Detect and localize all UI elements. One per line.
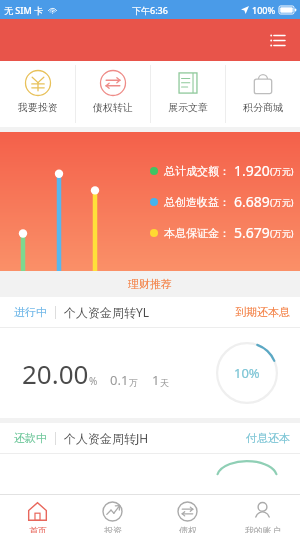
staticText: 债权转让 (93, 101, 133, 114)
staticText: 天 (160, 377, 169, 388)
staticText: 6.689 (234, 192, 270, 211)
staticText: 总创造收益： (164, 195, 230, 209)
staticText: (万元) (270, 227, 294, 239)
button[interactable]: 投资 (75, 495, 150, 533)
staticText: 进行中 (14, 305, 47, 319)
staticText: 展示文章 (168, 101, 208, 114)
staticText: 本息保证金： (164, 226, 230, 240)
staticText: (万元) (270, 196, 294, 208)
staticText: 投资 (104, 525, 122, 533)
staticText: 个人资金周转YL (64, 304, 150, 320)
button[interactable]: 还款中 (0, 423, 300, 494)
staticText: 还款中 (14, 431, 47, 445)
button[interactable]: 进行中 (0, 297, 300, 418)
staticText: % (89, 374, 98, 388)
staticText: 总计成交额： (164, 164, 230, 178)
button[interactable]: 首页 (0, 495, 75, 533)
staticText: 100% (252, 4, 276, 16)
staticText: 万 (129, 377, 138, 388)
staticText: 理财推荐 (128, 277, 172, 291)
staticText: 到期还本息 (235, 305, 290, 319)
staticText: 下午6:36 (132, 4, 168, 16)
button[interactable]: 展示文章 (151, 61, 225, 127)
staticText: 0.1 (110, 371, 129, 389)
staticText: 无 SIM 卡 (4, 4, 44, 16)
staticText: 我要投资 (18, 101, 58, 114)
button[interactable]: 债权 (150, 495, 225, 533)
staticText: 个人资金周转JH (64, 430, 149, 446)
staticText: 10% (234, 364, 260, 382)
staticText: 积分商城 (243, 101, 283, 114)
button[interactable]: 积分商城 (226, 61, 300, 127)
staticText: 1 (152, 371, 160, 389)
staticText: 1.920 (234, 161, 270, 180)
staticText: 债权 (179, 525, 197, 533)
staticText: 5.679 (234, 223, 270, 242)
staticText: (万元) (270, 165, 294, 177)
button[interactable]: 我要投资 (0, 61, 75, 127)
staticText: 首页 (29, 525, 47, 533)
button[interactable]: 债权转让 (76, 61, 150, 127)
button[interactable]: 我的账户 (225, 495, 300, 533)
staticText: 我的账户 (245, 525, 281, 533)
button[interactable]: Menu (264, 27, 290, 53)
staticText: 20.00 (22, 356, 89, 391)
staticText: 付息还本 (246, 431, 290, 445)
